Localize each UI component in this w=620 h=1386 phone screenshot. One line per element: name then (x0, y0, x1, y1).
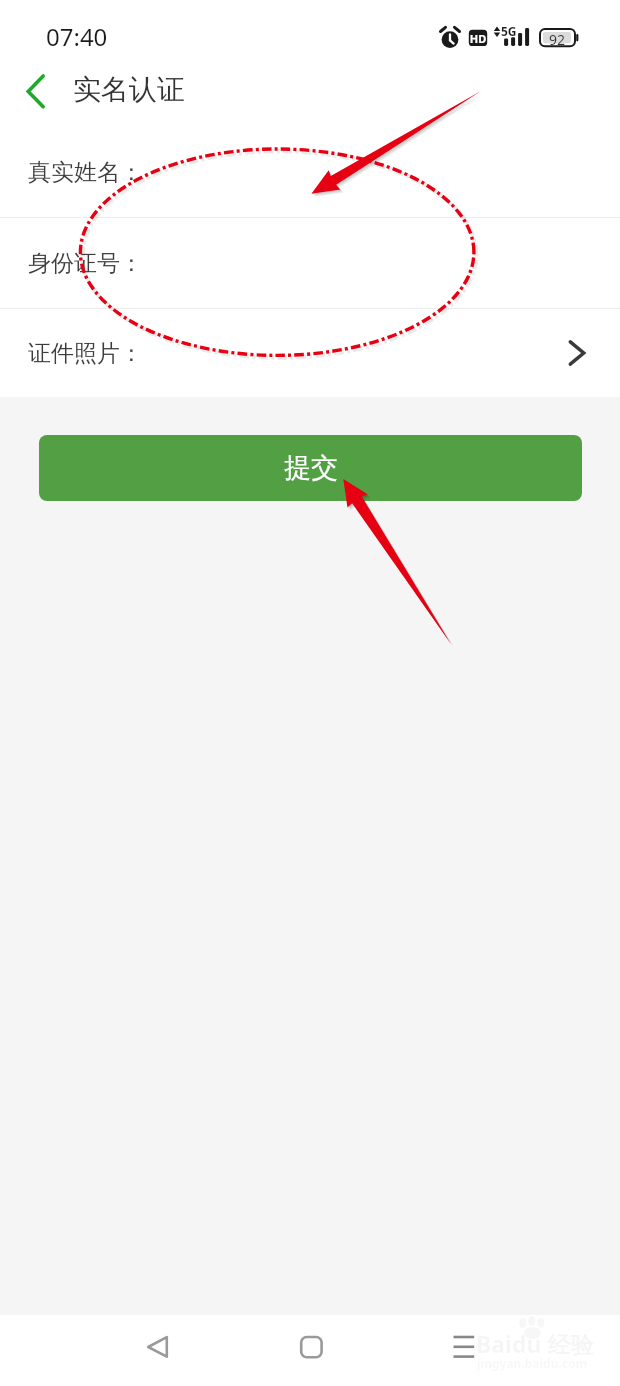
button[interactable]: Choose ID photo (548, 309, 620, 397)
button[interactable]: 真实姓名： (0, 128, 620, 217)
staticText: Baidu 经验 (476, 1328, 594, 1359)
button[interactable]: Back (125, 1315, 191, 1386)
staticText: 证件照片： (28, 339, 143, 368)
button[interactable]: 证件照片： (0, 309, 620, 397)
button[interactable]: Recent apps (431, 1315, 497, 1386)
staticText: 07:40 (46, 20, 108, 53)
staticText: 身份证号： (28, 249, 143, 278)
button[interactable]: Home (278, 1315, 344, 1386)
staticText: 实名认证 (73, 72, 185, 107)
staticText: 92 (543, 30, 571, 49)
button[interactable]: 身份证号： (0, 218, 620, 308)
staticText: 真实姓名： (28, 158, 143, 187)
staticText: 提交 (284, 451, 338, 485)
button[interactable]: 提交 (39, 435, 582, 501)
staticText: 5G (501, 23, 517, 39)
button[interactable]: Back (0, 64, 70, 128)
staticText: HD (468, 31, 488, 46)
